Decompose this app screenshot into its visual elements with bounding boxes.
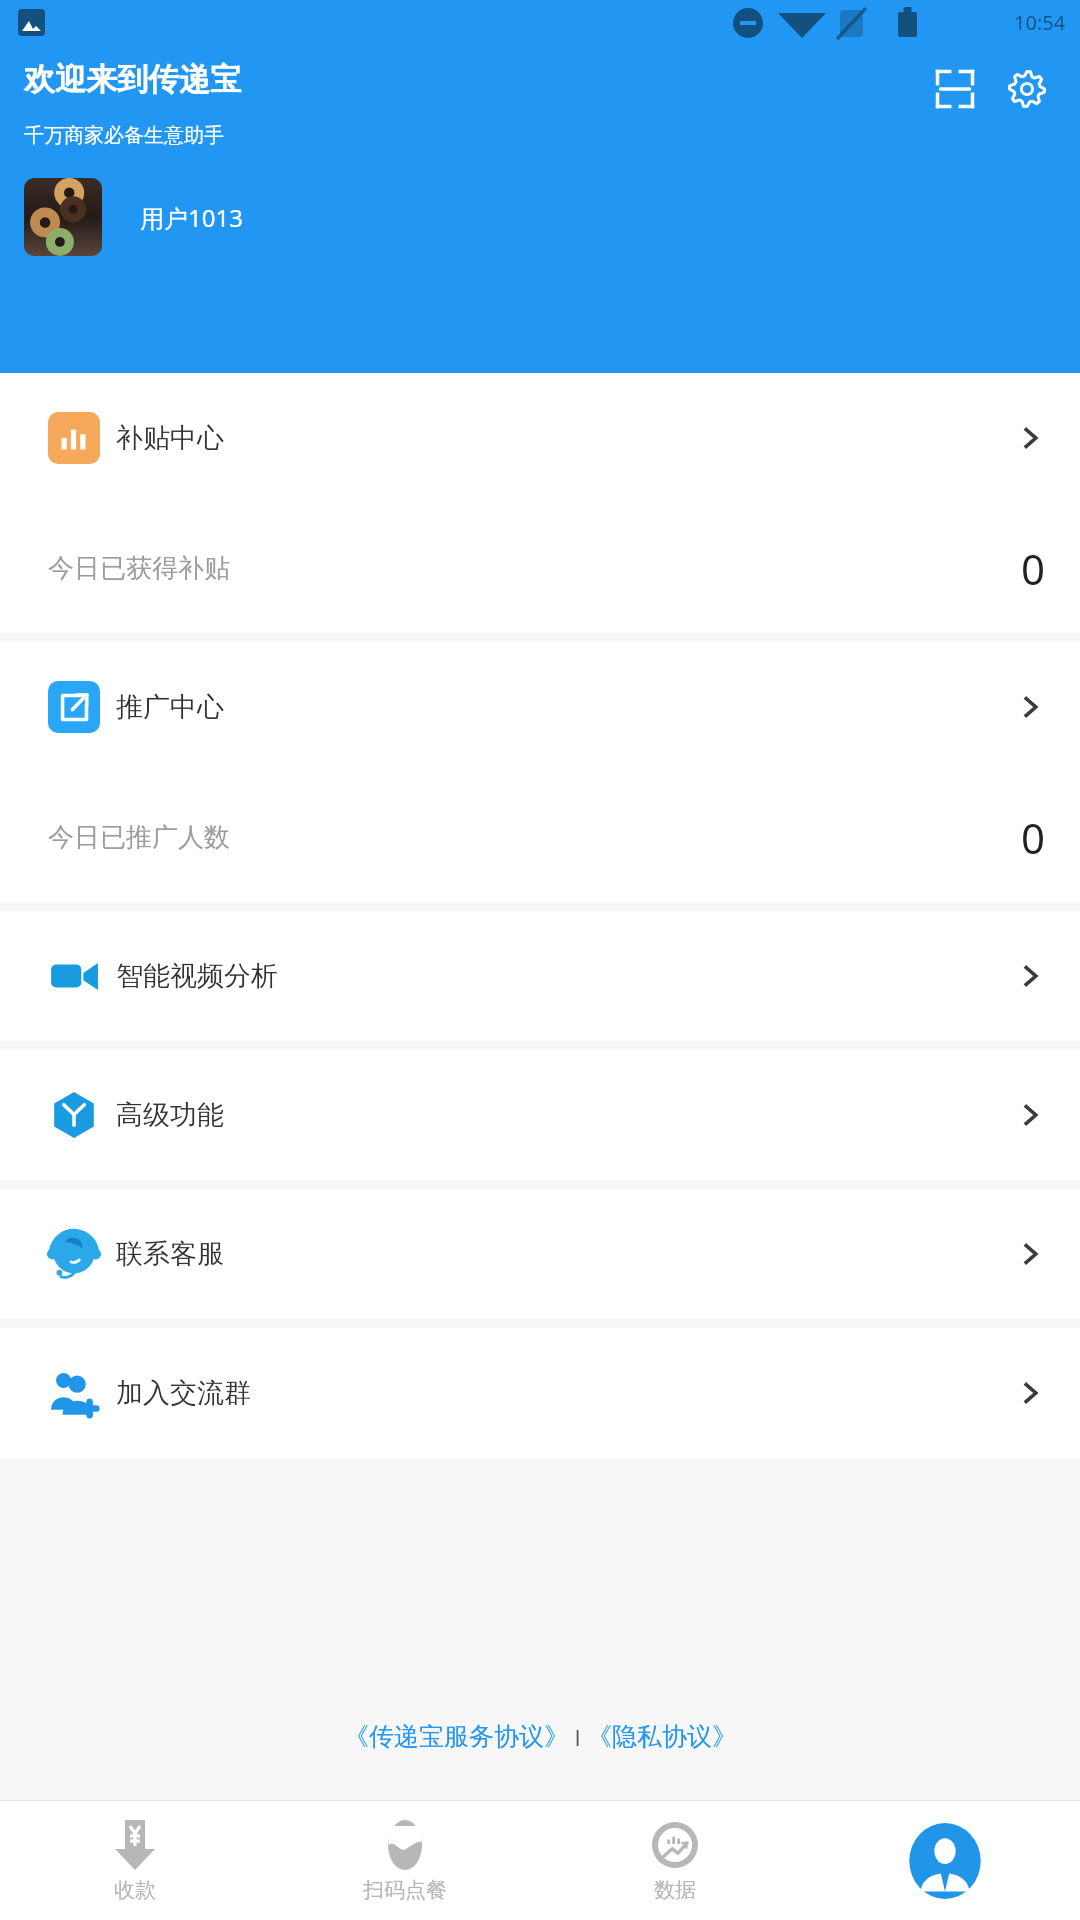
button[interactable]: 《传递宝服务协议》 bbox=[344, 1721, 569, 1752]
staticText: 收款 bbox=[114, 1877, 156, 1903]
staticText: 《隐私协议》 bbox=[587, 1721, 737, 1752]
button[interactable]: 补贴中心 bbox=[0, 373, 1080, 503]
staticText: l bbox=[569, 1722, 587, 1752]
button[interactable]: 今日已推广人数 bbox=[0, 772, 1080, 902]
staticText: 推广中心 bbox=[116, 690, 224, 724]
button[interactable]: 加入交流群 bbox=[0, 1328, 1080, 1458]
button[interactable]: 数据 bbox=[540, 1801, 810, 1920]
button[interactable]: 我的 bbox=[810, 1801, 1080, 1920]
staticText: 用户1013 bbox=[140, 201, 243, 234]
button[interactable]: 《隐私协议》 bbox=[587, 1721, 737, 1752]
staticText: 扫码点餐 bbox=[363, 1877, 447, 1903]
button[interactable]: 设置 bbox=[996, 58, 1058, 120]
staticText: 联系客服 bbox=[116, 1237, 224, 1271]
staticText: 今日已获得补贴 bbox=[48, 552, 230, 585]
staticText: 数据 bbox=[654, 1877, 696, 1903]
staticText: 0 bbox=[1021, 809, 1046, 866]
staticText: 千万商家必备生意助手 bbox=[24, 123, 224, 148]
staticText: 《传递宝服务协议》 bbox=[344, 1721, 569, 1752]
staticText: 智能视频分析 bbox=[116, 959, 278, 993]
staticText: 10:54 bbox=[1014, 9, 1066, 36]
button[interactable]: 今日已获得补贴 bbox=[0, 503, 1080, 633]
button[interactable]: 推广中心 bbox=[0, 642, 1080, 772]
staticText: 高级功能 bbox=[116, 1098, 224, 1132]
button[interactable]: 扫一扫 bbox=[924, 58, 986, 120]
button[interactable]: 扫码点餐 bbox=[270, 1801, 540, 1920]
staticText: 0 bbox=[1021, 540, 1046, 597]
staticText: 欢迎来到传递宝 bbox=[24, 60, 241, 99]
staticText: 今日已推广人数 bbox=[48, 821, 230, 854]
button[interactable]: 收款 bbox=[0, 1801, 270, 1920]
button[interactable]: 智能视频分析 bbox=[0, 911, 1080, 1041]
button[interactable]: 联系客服 bbox=[0, 1189, 1080, 1319]
staticText: 加入交流群 bbox=[116, 1376, 251, 1410]
button[interactable]: 高级功能 bbox=[0, 1050, 1080, 1180]
staticText: 补贴中心 bbox=[116, 421, 224, 455]
